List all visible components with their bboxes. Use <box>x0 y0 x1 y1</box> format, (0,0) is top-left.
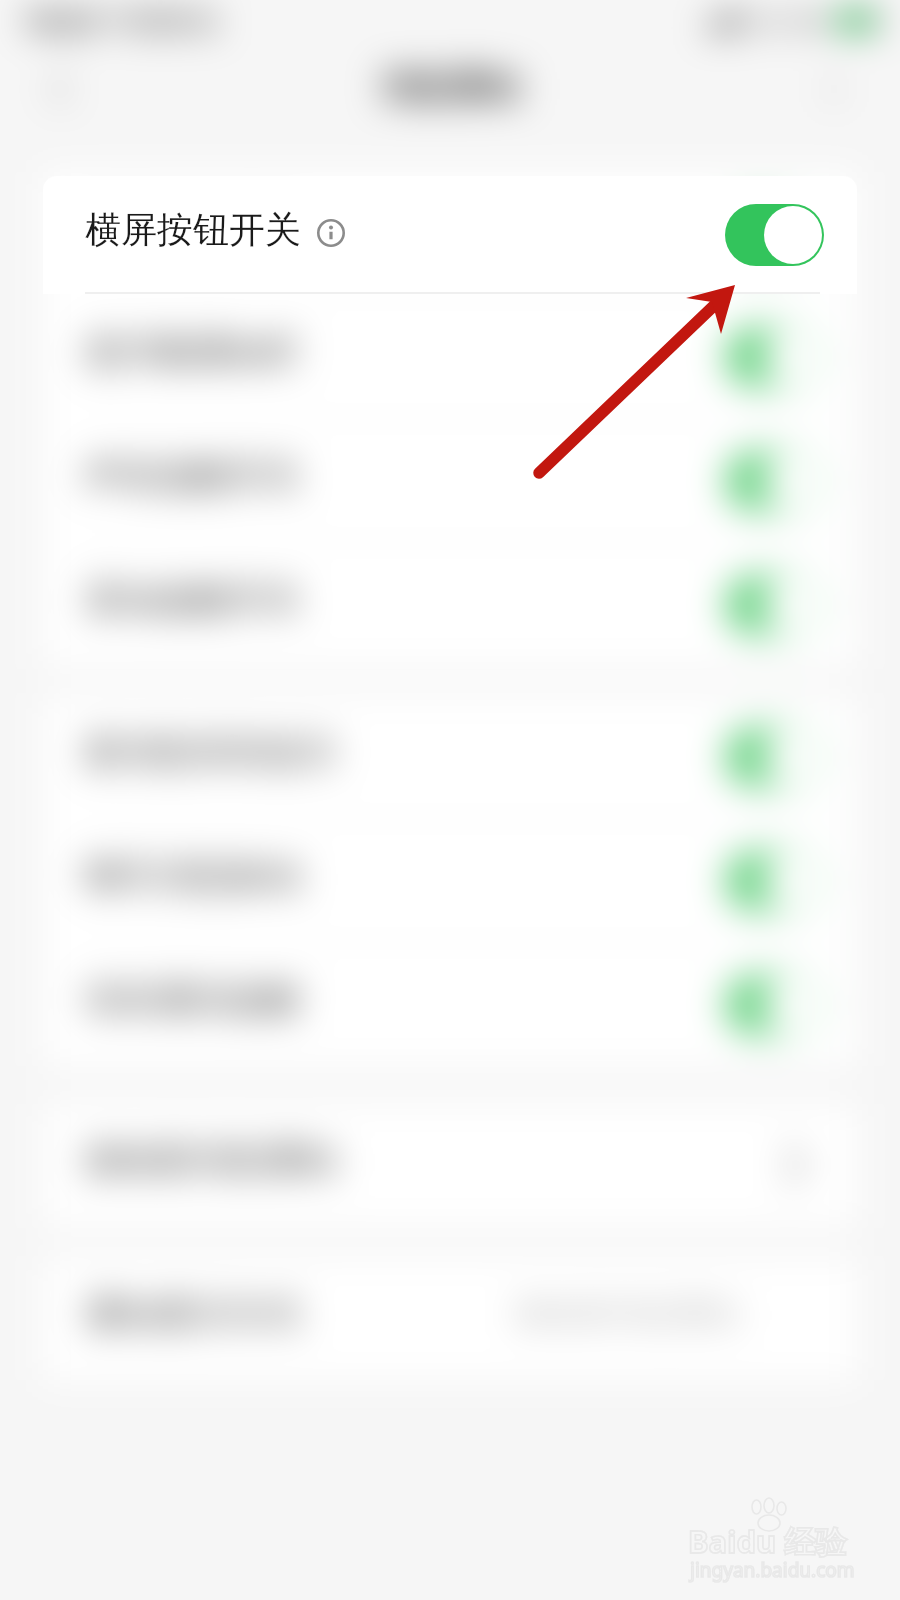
staticText: 声音提醒开关 <box>85 453 301 498</box>
staticText: 语音通话提醒 <box>85 977 301 1022</box>
staticText: 横屏按钮开关 <box>85 205 301 250</box>
staticText: 悬浮窗通知栏 <box>85 329 301 374</box>
other: Info <box>317 219 345 247</box>
staticText: 聊天消息振动 <box>85 853 301 898</box>
staticText: 消息通知 <box>380 65 520 109</box>
staticText: 10:23 <box>24 2 96 40</box>
staticText: 震动提醒开关 <box>85 577 301 622</box>
staticText: Baidu 经验 <box>688 1520 847 1562</box>
button[interactable]: 横屏按钮开关 <box>43 176 857 294</box>
staticText: 新消息语音提示 <box>85 729 337 774</box>
staticText: 中国移动 <box>106 4 218 39</box>
staticText: 横屏按钮开关 <box>85 207 301 252</box>
other: Annotation arrow <box>0 0 900 1600</box>
staticText: 89% <box>786 6 830 36</box>
staticText: 接收新消息通知 <box>85 1137 337 1182</box>
button[interactable]: Landscape button switch <box>725 204 824 266</box>
staticText: 通知显示方式 <box>85 1291 301 1336</box>
staticText: jingyan.baidu.com <box>690 1557 855 1583</box>
